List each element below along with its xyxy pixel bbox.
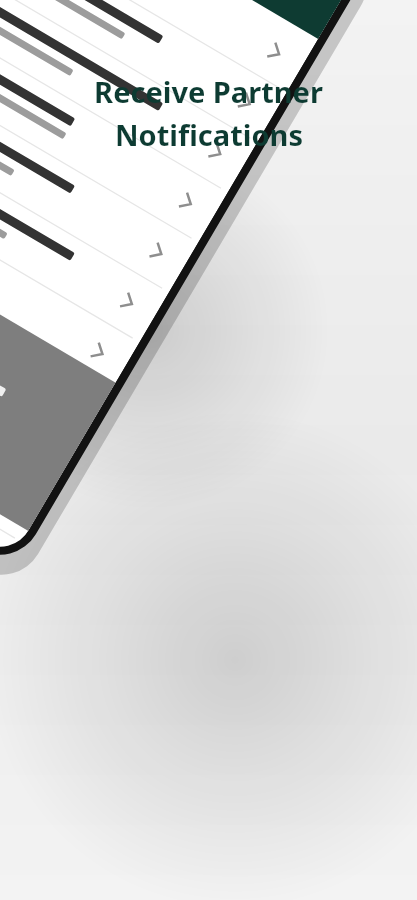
button[interactable]: Partner notification preview [0, 160, 320, 810]
staticText: Receive Partner [94, 72, 323, 111]
staticText: Notifications [115, 115, 303, 154]
